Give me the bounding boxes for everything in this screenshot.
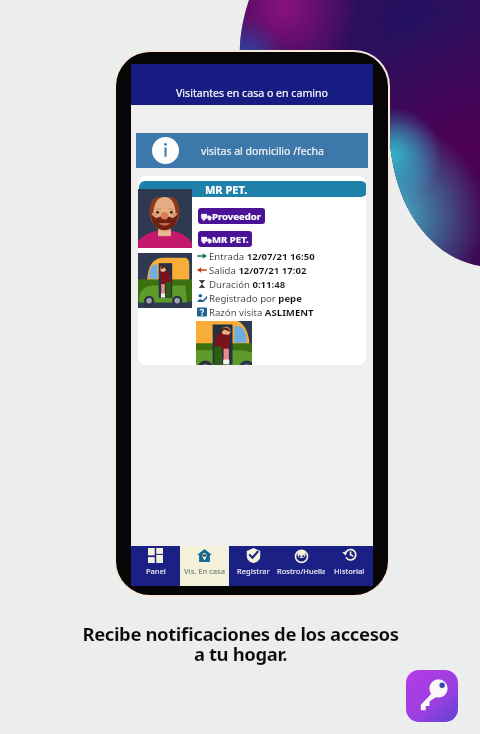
button[interactable]: Panel xyxy=(131,546,180,586)
staticText: visitas al domicilio /fecha xyxy=(201,144,324,158)
button[interactable]: MR PET. xyxy=(201,231,249,247)
button[interactable]: visitas al domicilio /fecha xyxy=(136,133,368,168)
staticText: Entrada 12/07/21 16:50 xyxy=(209,250,315,263)
button[interactable]: Rostro o huella xyxy=(277,546,325,586)
staticText: Vis. En casa xyxy=(184,566,226,576)
button[interactable]: Visitas en casa xyxy=(180,546,229,586)
staticText: Panel xyxy=(146,566,166,576)
staticText: Visitantes en casa o en camino xyxy=(176,86,328,100)
button[interactable]: Historial xyxy=(325,546,373,586)
button[interactable]: App icon xyxy=(406,670,458,722)
staticText: Proveedor xyxy=(212,210,262,223)
button[interactable]: Proveedor xyxy=(201,208,262,224)
staticText: Rostro/Huella xyxy=(277,566,325,576)
staticText: MR PET. xyxy=(212,233,249,246)
staticText: Historial xyxy=(334,566,365,576)
staticText: MR PET. xyxy=(205,182,248,197)
staticText: Registrado por pepe xyxy=(209,292,302,305)
button[interactable]: MR PET. xyxy=(138,176,366,365)
staticText: Registrar xyxy=(237,566,270,576)
button[interactable]: Registrar xyxy=(229,546,277,586)
staticText: Recibe notificaciones de los accesos a t… xyxy=(82,621,399,667)
staticText: Duración 0:11:48 xyxy=(209,278,286,291)
staticText: Razón visita ASLIMENT xyxy=(209,306,314,319)
staticText: Salida 12/07/21 17:02 xyxy=(209,264,307,277)
